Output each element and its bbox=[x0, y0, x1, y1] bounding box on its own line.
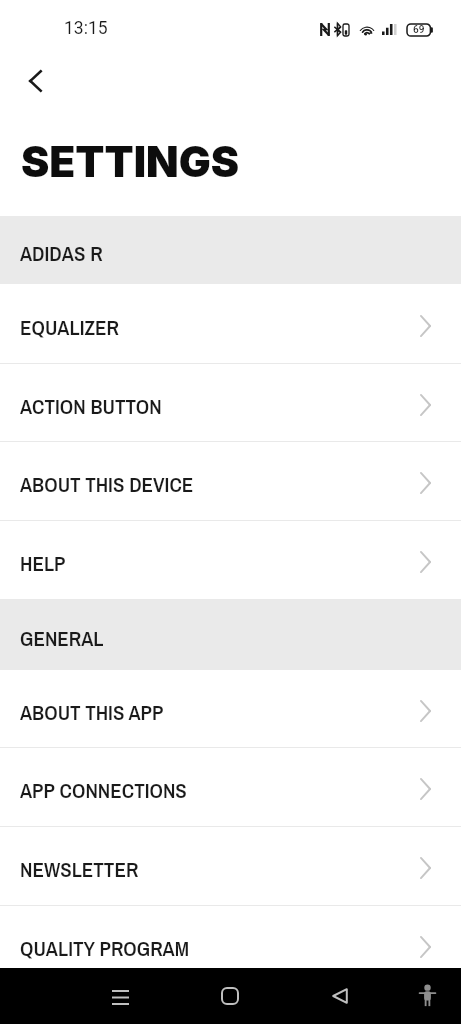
button[interactable]: Back bbox=[310, 968, 370, 1024]
button[interactable]: ABOUT THIS APP bbox=[0, 670, 461, 747]
staticText: ADIDAS R bbox=[20, 239, 103, 267]
staticText: QUALITY PROGRAM bbox=[20, 934, 420, 962]
staticText: ACTION BUTTON bbox=[20, 392, 420, 420]
staticText: HELP bbox=[20, 549, 420, 577]
button[interactable]: ABOUT THIS DEVICE bbox=[0, 442, 461, 520]
staticText: GENERAL bbox=[20, 624, 104, 652]
staticText: 69 bbox=[413, 24, 425, 36]
staticText: SETTINGS bbox=[21, 136, 240, 187]
staticText: ABOUT THIS APP bbox=[20, 698, 420, 726]
staticText: EQUALIZER bbox=[20, 313, 420, 341]
staticText: ABOUT THIS DEVICE bbox=[20, 470, 420, 498]
button[interactable]: Recent apps bbox=[90, 968, 150, 1024]
button[interactable]: NEWSLETTER bbox=[0, 827, 461, 905]
button[interactable]: Home bbox=[200, 968, 260, 1024]
staticText: 13:15 bbox=[64, 18, 108, 39]
button[interactable]: QUALITY PROGRAM bbox=[0, 906, 461, 984]
button[interactable]: ACTION BUTTON bbox=[0, 364, 461, 441]
button[interactable]: APP CONNECTIONS bbox=[0, 748, 461, 826]
staticText: NEWSLETTER bbox=[20, 855, 420, 883]
button[interactable]: Accessibility menu bbox=[397, 968, 457, 1024]
button[interactable]: HELP bbox=[0, 521, 461, 599]
staticText: APP CONNECTIONS bbox=[20, 776, 420, 804]
button[interactable]: EQUALIZER bbox=[0, 284, 461, 363]
button[interactable]: Back bbox=[6, 52, 64, 110]
